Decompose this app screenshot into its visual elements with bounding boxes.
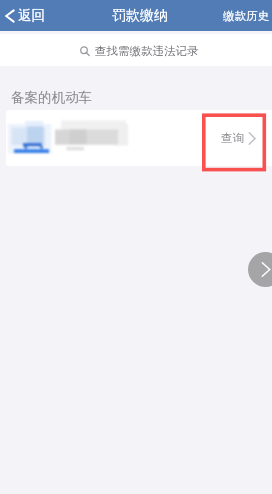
staticText: 罚款缴纳 — [112, 7, 168, 25]
staticText: 返回 — [18, 7, 45, 24]
button[interactable]: 查找需缴款违法记录 — [0, 34, 272, 66]
button[interactable]: 查询 — [214, 110, 272, 166]
staticText: 备案的机动车 — [11, 89, 92, 106]
button[interactable]: 缴款历史 — [223, 9, 272, 23]
staticText: 查找需缴款违法记录 — [95, 44, 199, 58]
button[interactable]: Expand panel — [248, 252, 272, 287]
staticText: 查询 — [221, 131, 244, 145]
button[interactable]: 返回 — [0, 7, 51, 24]
